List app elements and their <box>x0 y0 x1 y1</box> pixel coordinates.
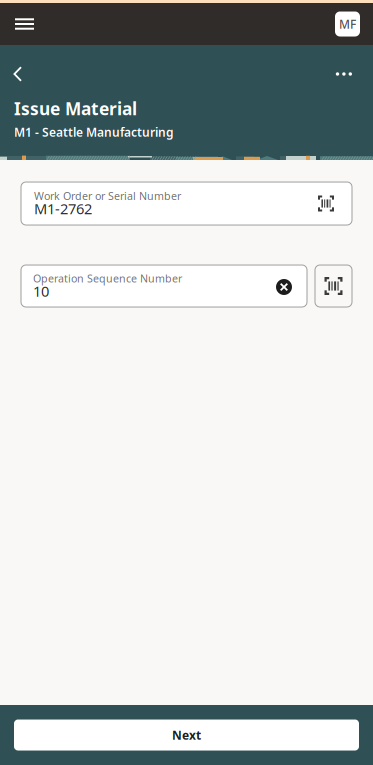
button[interactable]: Operation Sequence Number <box>21 265 307 307</box>
button[interactable]: Next <box>0 719 373 750</box>
staticText: M1-2762 <box>34 199 92 218</box>
button[interactable]: More options <box>320 59 373 89</box>
staticText: M1 - Seattle Manufacturing <box>14 124 174 140</box>
button[interactable]: Back <box>0 59 36 89</box>
staticText: 10 <box>33 281 49 301</box>
button[interactable]: Scan barcode <box>315 265 352 307</box>
staticText: Operation Sequence Number <box>33 271 182 285</box>
button[interactable]: Menu <box>0 4 48 44</box>
staticText: Next <box>172 727 201 743</box>
staticText: Work Order or Serial Number <box>34 189 181 203</box>
button[interactable]: Work Order or Serial Number <box>21 182 352 225</box>
staticText: MF <box>339 16 356 32</box>
button[interactable]: Profile <box>322 3 373 44</box>
staticText: Issue Material <box>14 97 137 120</box>
